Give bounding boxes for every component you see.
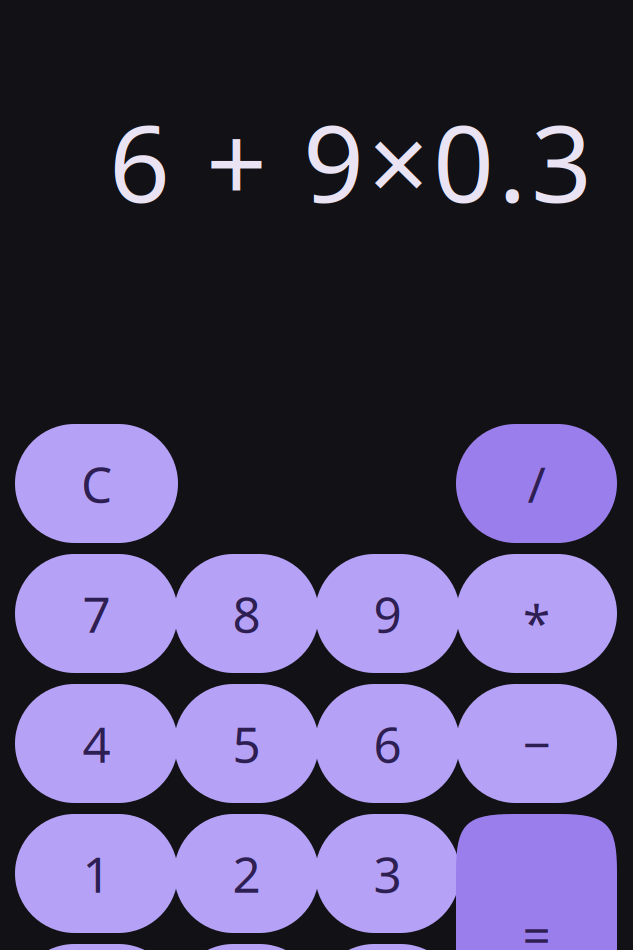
button[interactable]: / [456, 424, 617, 543]
button[interactable]: 9 [315, 554, 460, 673]
button[interactable]: * [456, 554, 617, 673]
staticText: 6 + 9×0.3 [109, 90, 592, 232]
button[interactable]: 4 [15, 684, 178, 803]
staticText: C [81, 451, 112, 516]
staticText: 7 [82, 581, 110, 646]
staticText: 9 [373, 581, 401, 646]
staticText: 5 [232, 711, 260, 776]
staticText: 2 [232, 841, 260, 906]
button[interactable]: 2 [174, 814, 319, 933]
staticText: 6 [373, 711, 401, 776]
staticText: 1 [82, 841, 110, 906]
button[interactable]: = [456, 814, 617, 950]
button[interactable]: 6 [315, 684, 460, 803]
staticText: * [523, 590, 550, 655]
button[interactable]: 0 [15, 944, 178, 950]
staticText: 3 [373, 841, 401, 906]
button[interactable]: % [315, 944, 460, 950]
button[interactable]: . [174, 944, 319, 950]
button[interactable]: 3 [315, 814, 460, 933]
button[interactable]: C [15, 424, 178, 543]
button[interactable]: 5 [174, 684, 319, 803]
staticText: − [522, 711, 550, 776]
staticText: 4 [82, 711, 110, 776]
staticText: = [522, 902, 550, 950]
button[interactable]: 1 [15, 814, 178, 933]
staticText: / [527, 451, 545, 516]
button[interactable]: 8 [174, 554, 319, 673]
button[interactable]: − [456, 684, 617, 803]
staticText: 8 [232, 581, 260, 646]
button[interactable]: 7 [15, 554, 178, 673]
